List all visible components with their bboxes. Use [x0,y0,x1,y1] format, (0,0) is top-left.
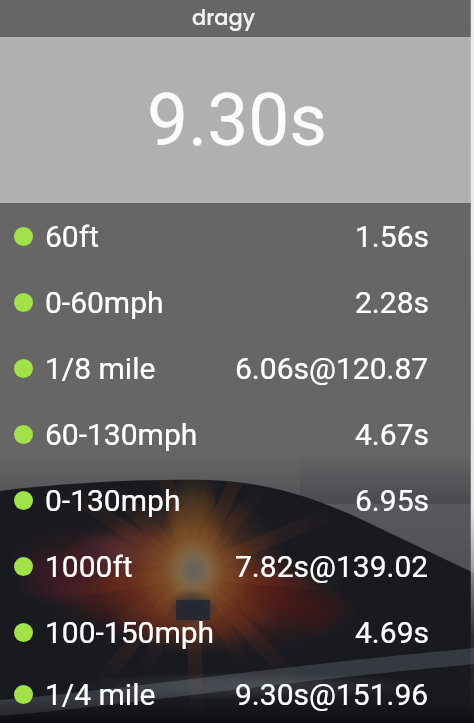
staticText: 1/8 mile [45,351,156,386]
staticText: 6.06s@120.87 [235,351,429,386]
staticText: 4.69s [355,615,429,650]
staticText: 1.56s [355,219,429,254]
button[interactable]: 60ft [0,203,474,269]
staticText: 60ft [45,219,99,254]
staticText: 1/4 mile [45,677,156,712]
staticText: 4.67s [355,417,429,452]
button[interactable]: 0-130mph [0,467,474,533]
staticText: 9.30s [147,77,328,163]
staticText: 0-60mph [45,285,164,320]
staticText: 6.95s [355,483,429,518]
button[interactable]: 1/4 mile [0,665,474,723]
button[interactable]: 0-60mph [0,269,474,335]
staticText: 2.28s [355,285,429,320]
staticText: 60-130mph [45,417,198,452]
staticText: dragy [192,3,255,32]
staticText: 9.30s@151.96 [235,677,429,712]
button[interactable]: 60-130mph [0,401,474,467]
button[interactable]: 1/8 mile [0,335,474,401]
staticText: 7.82s@139.02 [235,549,429,584]
staticText: 0-130mph [45,483,181,518]
button[interactable]: dragy [0,0,474,37]
button[interactable]: 1000ft [0,533,474,599]
staticText: 1000ft [45,549,133,584]
staticText: 100-150mph [45,615,215,650]
button[interactable]: 100-150mph [0,599,474,665]
